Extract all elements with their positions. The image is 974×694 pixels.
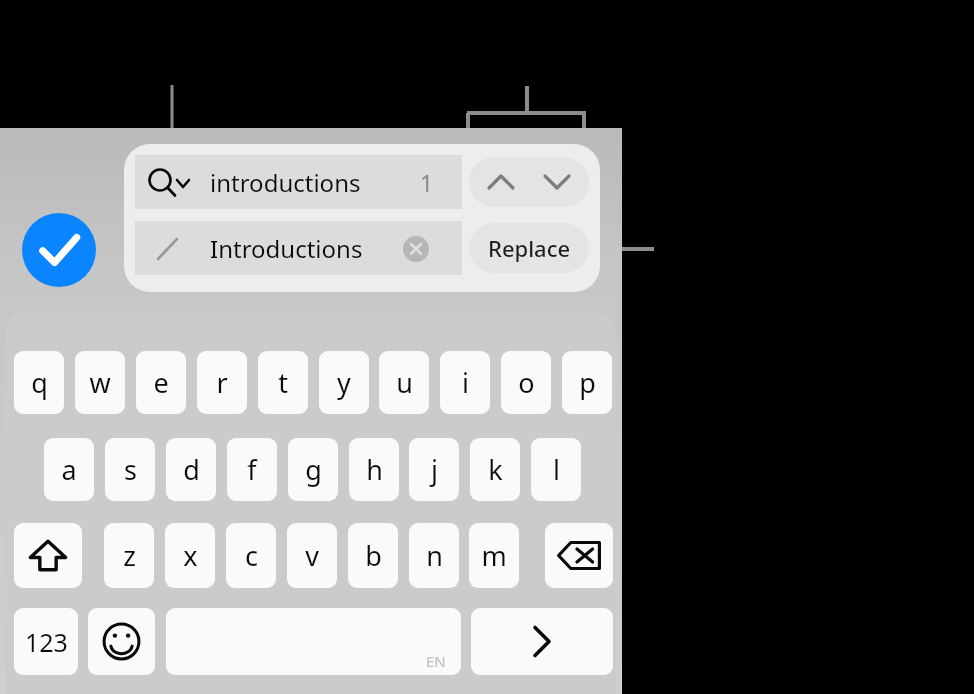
button[interactable]: m <box>469 523 519 588</box>
button[interactable]: Backspace <box>545 523 613 588</box>
button[interactable]: n <box>409 523 459 588</box>
staticText: p <box>579 364 596 401</box>
button[interactable]: e <box>136 351 186 414</box>
button[interactable]: 123 <box>14 608 78 675</box>
button[interactable]: Previous result <box>473 157 529 207</box>
staticText: s <box>124 451 137 488</box>
button[interactable]: b <box>348 523 398 588</box>
button[interactable]: p <box>562 351 612 414</box>
button[interactable]: Next result <box>529 157 585 207</box>
button[interactable]: z <box>104 523 154 588</box>
staticText: m <box>481 537 507 574</box>
staticText: r <box>216 364 228 401</box>
button[interactable]: w <box>75 351 125 414</box>
button[interactable]: s <box>105 438 155 501</box>
staticText: z <box>123 537 136 574</box>
staticText: v <box>305 537 319 574</box>
button[interactable]: Space <box>166 608 461 675</box>
button[interactable]: i <box>440 351 490 414</box>
staticText: 1 <box>420 167 434 198</box>
staticText: y <box>337 364 351 401</box>
button[interactable]: v <box>287 523 337 588</box>
button[interactable]: g <box>288 438 338 501</box>
button[interactable]: Done <box>22 213 96 287</box>
other: Edit <box>155 236 185 262</box>
button[interactable]: r <box>197 351 247 414</box>
staticText: EN <box>426 651 446 671</box>
staticText: d <box>183 451 200 488</box>
button[interactable]: Replace <box>469 223 589 273</box>
button[interactable]: Shift <box>14 523 82 588</box>
button[interactable]: u <box>379 351 429 414</box>
button[interactable]: Clear text <box>403 236 429 262</box>
staticText: o <box>518 364 535 401</box>
button[interactable]: y <box>319 351 369 414</box>
button[interactable]: f <box>227 438 277 501</box>
staticText: introductions <box>210 166 361 199</box>
staticText: f <box>247 451 257 488</box>
button[interactable]: a <box>44 438 94 501</box>
staticText: n <box>426 537 443 574</box>
staticText: 123 <box>25 625 68 659</box>
button[interactable]: l <box>531 438 581 501</box>
staticText: w <box>89 364 111 401</box>
button[interactable]: Edit <box>135 221 462 275</box>
button[interactable]: Emoji <box>88 608 155 675</box>
staticText: b <box>365 537 382 574</box>
button[interactable]: Search options <box>135 155 462 209</box>
button[interactable]: j <box>409 438 459 501</box>
button[interactable]: c <box>226 523 276 588</box>
button[interactable]: t <box>258 351 308 414</box>
button[interactable]: Enter <box>471 608 613 675</box>
staticText: a <box>61 451 77 488</box>
staticText: e <box>153 364 169 401</box>
staticText: k <box>488 451 503 488</box>
staticText: x <box>183 537 198 574</box>
staticText: g <box>305 451 322 488</box>
button[interactable]: q <box>14 351 64 414</box>
staticText: l <box>553 451 560 488</box>
staticText: Introductions <box>210 232 363 265</box>
button[interactable]: k <box>470 438 520 501</box>
staticText: c <box>245 537 258 574</box>
button[interactable]: h <box>349 438 399 501</box>
button[interactable]: x <box>165 523 215 588</box>
other: Search options <box>147 167 191 197</box>
staticText: u <box>396 364 413 401</box>
button[interactable]: d <box>166 438 216 501</box>
staticText: h <box>366 451 383 488</box>
staticText: Replace <box>488 233 571 263</box>
staticText: q <box>31 364 48 401</box>
staticText: j <box>431 451 438 488</box>
staticText: t <box>278 364 288 401</box>
staticText: i <box>462 364 469 401</box>
button[interactable]: o <box>501 351 551 414</box>
